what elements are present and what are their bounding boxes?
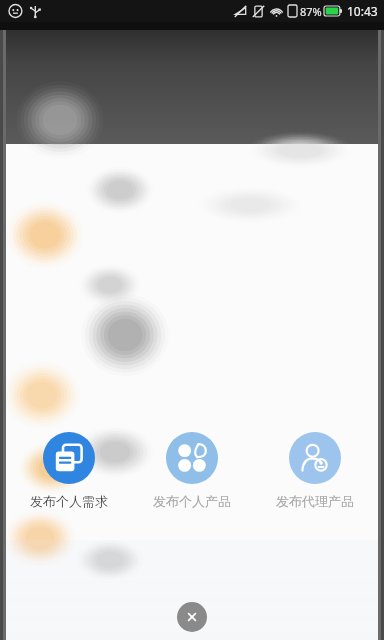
button[interactable]: 发布个人需求 [11,430,127,511]
staticText: 发布个人产品 [153,493,231,509]
button[interactable]: 发布个人产品 [134,430,250,511]
staticText: 87% [300,4,322,19]
button[interactable]: Close [177,602,207,632]
staticText: 10:43 [347,3,378,19]
staticText: 发布个人需求 [30,493,108,509]
staticText: 发布代理产品 [276,493,354,509]
button[interactable]: 发布代理产品 [257,430,373,511]
